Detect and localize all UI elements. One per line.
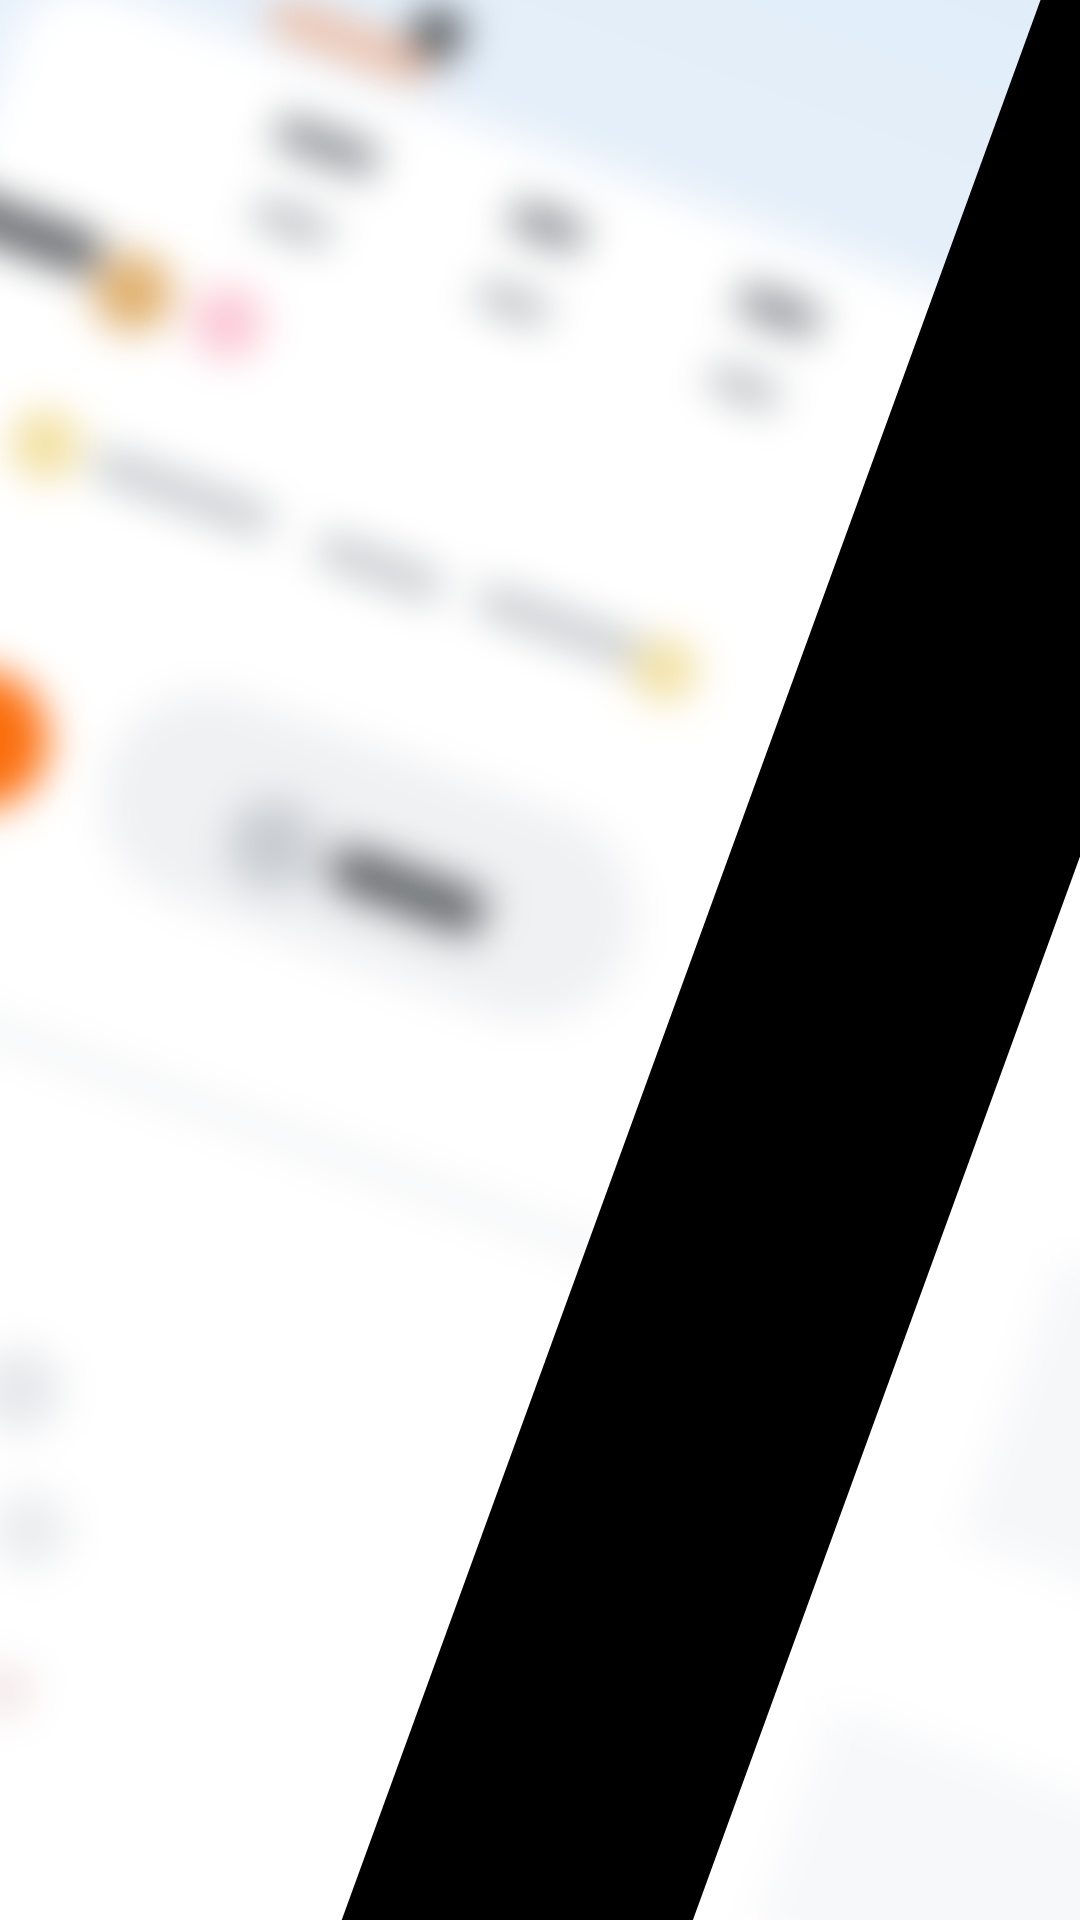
button[interactable] [428, 157, 634, 387]
button[interactable] [71, 662, 666, 1052]
button[interactable] [659, 241, 865, 471]
button[interactable]: Create [0, 650, 68, 829]
button[interactable]: Account [404, 1, 471, 67]
button[interactable] [207, 77, 413, 307]
